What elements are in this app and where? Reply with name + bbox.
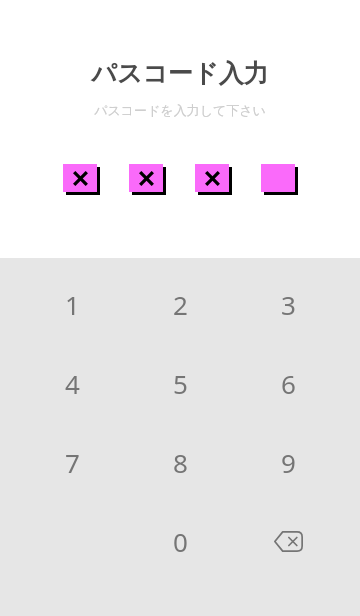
button[interactable]: 3 [234, 265, 342, 344]
staticText: 5 [173, 366, 188, 401]
button[interactable]: 2 [126, 265, 234, 344]
staticText: パスコード入力 [91, 58, 269, 89]
staticText: 4 [65, 366, 80, 401]
staticText: パスコードを入力して下さい [94, 102, 266, 118]
staticText: 8 [173, 445, 188, 480]
button[interactable]: 5 [126, 344, 234, 423]
staticText: 3 [281, 287, 296, 322]
staticText: 0 [173, 524, 188, 559]
button[interactable]: 0 [126, 502, 234, 581]
button[interactable]: Backspace [234, 502, 342, 581]
staticText: 6 [281, 366, 296, 401]
button[interactable]: 8 [126, 423, 234, 502]
staticText: 7 [65, 445, 80, 480]
button[interactable]: 7 [18, 423, 126, 502]
button[interactable]: 9 [234, 423, 342, 502]
staticText: 9 [281, 445, 296, 480]
button[interactable]: 1 [18, 265, 126, 344]
staticText: 1 [65, 287, 80, 322]
button[interactable]: 4 [18, 344, 126, 423]
button[interactable]: 6 [234, 344, 342, 423]
staticText: 2 [173, 287, 188, 322]
